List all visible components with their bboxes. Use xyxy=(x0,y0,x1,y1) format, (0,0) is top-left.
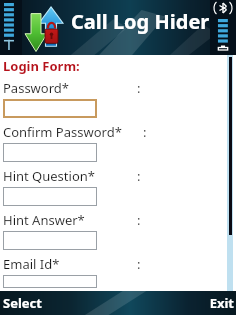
staticText: Login Form: xyxy=(3,57,80,75)
staticText: : xyxy=(137,79,141,97)
staticText: Exit xyxy=(209,294,234,312)
staticText: Email Id* xyxy=(3,255,60,273)
staticText: : xyxy=(137,255,141,273)
button[interactable]: Hint Question* xyxy=(3,165,236,209)
button[interactable]: Password* xyxy=(3,77,236,121)
staticText: : xyxy=(137,167,141,185)
staticText: Hint Answer* xyxy=(3,211,85,229)
staticText: Call Log Hider xyxy=(71,8,210,35)
button[interactable] xyxy=(3,187,97,206)
button[interactable]: Confirm Password* xyxy=(3,121,236,165)
button[interactable] xyxy=(3,275,97,288)
button[interactable] xyxy=(3,99,97,118)
button[interactable]: Hint Answer* xyxy=(3,209,236,253)
staticText: Select xyxy=(3,294,42,312)
staticText: Hint Question* xyxy=(3,167,95,185)
button[interactable] xyxy=(3,143,97,162)
button[interactable]: Email Id* xyxy=(3,253,236,291)
staticText: : xyxy=(137,211,141,229)
staticText: Confirm Password* xyxy=(3,123,122,141)
staticText: Password* xyxy=(3,79,69,97)
button[interactable] xyxy=(3,231,97,250)
button[interactable]: Exit xyxy=(176,291,236,315)
button[interactable]: Select xyxy=(0,291,70,315)
staticText: : xyxy=(143,123,147,141)
